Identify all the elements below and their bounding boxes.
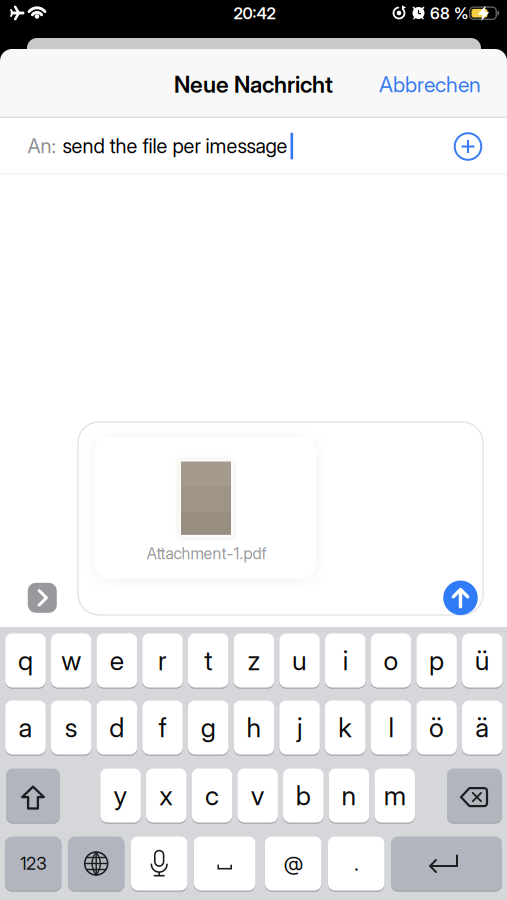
staticText: s [65, 712, 78, 743]
staticText: a [18, 712, 32, 743]
staticText: m [384, 780, 406, 811]
staticText: ö [429, 712, 444, 743]
button[interactable]: t [188, 633, 228, 687]
button[interactable]: w [51, 633, 91, 687]
button[interactable]: x [146, 768, 186, 822]
button[interactable]: u [279, 633, 320, 687]
staticText: y [114, 780, 128, 811]
staticText: l [388, 712, 393, 743]
button[interactable]: b [283, 768, 324, 822]
button[interactable]: h [234, 700, 274, 754]
button[interactable]: ö [416, 700, 457, 754]
staticText: u [292, 645, 307, 676]
staticText: 20:42 [233, 4, 275, 23]
button[interactable]: Erweitern [28, 583, 57, 613]
staticText: Neue Nachricht [174, 71, 333, 98]
staticText: send the file per imessage [62, 134, 287, 158]
staticText: v [251, 780, 265, 811]
button[interactable]: p [416, 633, 457, 687]
button[interactable]: d [97, 700, 137, 754]
staticText: c [205, 780, 219, 811]
staticText: p [429, 645, 444, 676]
button[interactable]: Nächste Tastatur [68, 836, 124, 890]
button[interactable]: k [325, 700, 365, 754]
button[interactable]: Umschalttaste [6, 768, 60, 822]
button[interactable]: a [5, 700, 46, 754]
button[interactable]: r [142, 633, 183, 687]
button[interactable]: Zeilenschalter [391, 836, 502, 890]
button[interactable]: ä [462, 700, 503, 754]
button[interactable]: i [325, 633, 365, 687]
button[interactable]: Diktieren [131, 836, 187, 890]
staticText: o [383, 645, 398, 676]
staticText: ä [475, 712, 489, 743]
staticText: d [109, 712, 124, 743]
staticText: i [343, 645, 348, 676]
staticText: j [297, 712, 302, 743]
button[interactable]: q [5, 633, 46, 687]
button[interactable]: f [142, 700, 183, 754]
staticText: Abbrechen [379, 72, 481, 97]
button[interactable]: n [329, 768, 369, 822]
button[interactable]: v [237, 768, 278, 822]
staticText: t [204, 645, 212, 676]
button[interactable]: Leerzeichen [194, 836, 255, 890]
staticText: . [354, 852, 358, 875]
button[interactable]: @ [265, 836, 321, 890]
button[interactable]: Senden [443, 580, 478, 615]
button[interactable]: . [328, 836, 384, 890]
button[interactable]: o [371, 633, 411, 687]
staticText: w [61, 645, 81, 676]
button[interactable]: e [97, 633, 137, 687]
button[interactable]: l [371, 700, 411, 754]
staticText: An: [27, 134, 55, 158]
staticText: b [296, 780, 311, 811]
button[interactable]: y [100, 768, 141, 822]
staticText: z [247, 645, 260, 676]
button[interactable]: j [279, 700, 320, 754]
staticText: @ [284, 852, 303, 875]
staticText: x [159, 780, 173, 811]
staticText: k [338, 712, 352, 743]
button[interactable]: 123 [5, 836, 61, 890]
staticText: n [341, 780, 356, 811]
button[interactable]: Kontakt hinzufügen [455, 133, 481, 160]
button[interactable]: c [192, 768, 232, 822]
button[interactable]: z [234, 633, 274, 687]
button[interactable]: g [188, 700, 228, 754]
button[interactable]: s [51, 700, 91, 754]
staticText: g [201, 712, 216, 743]
staticText: q [18, 645, 33, 676]
button[interactable]: m [374, 768, 415, 822]
button[interactable]: Attachment-1.pdf [95, 437, 316, 578]
staticText: 123 [20, 853, 46, 874]
button[interactable]: Abbrechen [379, 72, 481, 97]
staticText: ü [475, 645, 490, 676]
staticText: Attachment-1.pdf [146, 544, 266, 563]
staticText: 68 % [430, 4, 469, 23]
button[interactable]: Löschen [447, 768, 502, 822]
staticText: r [158, 645, 167, 676]
staticText: f [158, 712, 166, 743]
button[interactable]: ü [462, 633, 503, 687]
staticText: h [246, 712, 261, 743]
staticText: e [110, 645, 124, 676]
